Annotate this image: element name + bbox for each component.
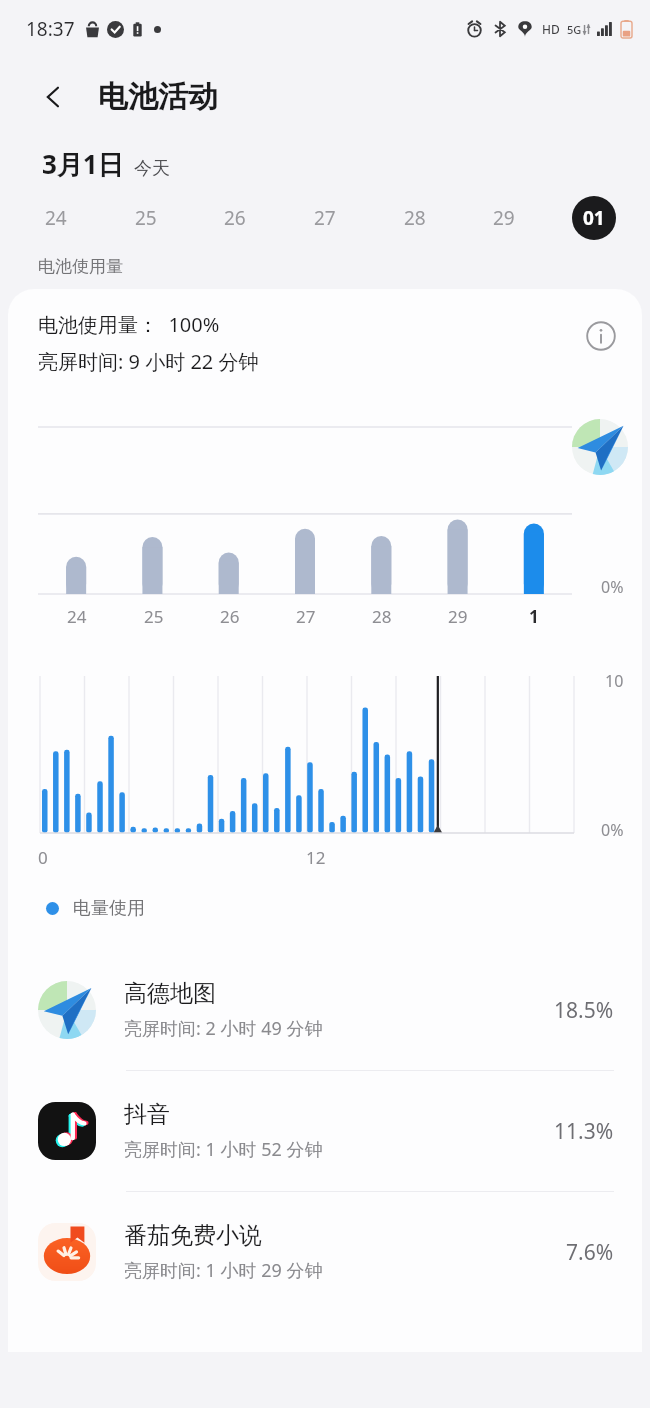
button[interactable]: 抖音 bbox=[8, 1071, 642, 1192]
staticText: 29 bbox=[493, 205, 515, 231]
staticText: 高德地图 bbox=[124, 979, 216, 1008]
staticText: 27 bbox=[296, 605, 316, 628]
button[interactable]: 高德地图 bbox=[8, 950, 642, 1071]
staticText: 5G bbox=[567, 22, 582, 37]
staticText: 0 bbox=[38, 846, 48, 869]
button[interactable]: 01 bbox=[572, 196, 616, 240]
staticText: 亮屏时间: 9 小时 22 分钟 bbox=[38, 348, 259, 375]
staticText: 今天 bbox=[134, 157, 170, 180]
staticText: 1 bbox=[529, 605, 539, 628]
staticText: 电量使用 bbox=[73, 897, 145, 920]
staticText: 0% bbox=[601, 576, 624, 598]
staticText: 亮屏时间: 1 小时 52 分钟 bbox=[124, 1137, 323, 1162]
button[interactable]: 26 bbox=[213, 196, 257, 240]
staticText: 番茄免费小说 bbox=[124, 1221, 262, 1250]
staticText: 28 bbox=[372, 605, 392, 628]
staticText: 26 bbox=[220, 605, 240, 628]
staticText: 25 bbox=[144, 605, 164, 628]
staticText: 24 bbox=[67, 605, 87, 628]
staticText: 0% bbox=[601, 819, 624, 841]
button[interactable]: Back bbox=[30, 73, 78, 121]
staticText: 亮屏时间: 1 小时 29 分钟 bbox=[124, 1258, 323, 1283]
staticText: 3月1日 bbox=[42, 146, 124, 182]
staticText: 电池活动 bbox=[98, 78, 218, 116]
staticText: 电池使用量： 100% bbox=[38, 311, 220, 338]
staticText: 7.6% bbox=[566, 1238, 614, 1267]
staticText: 29 bbox=[448, 605, 468, 628]
button[interactable]: 番茄免费小说 bbox=[8, 1192, 642, 1312]
button[interactable]: 29 bbox=[482, 196, 526, 240]
staticText: 26 bbox=[224, 205, 246, 231]
staticText: HD bbox=[542, 21, 560, 37]
staticText: 24 bbox=[45, 205, 67, 231]
button[interactable]: 24 bbox=[34, 196, 78, 240]
staticText: 25 bbox=[135, 205, 157, 231]
staticText: 亮屏时间: 2 小时 49 分钟 bbox=[124, 1016, 323, 1041]
button[interactable]: Info bbox=[578, 313, 624, 359]
button[interactable]: 27 bbox=[303, 196, 347, 240]
staticText: 抖音 bbox=[124, 1100, 170, 1129]
staticText: 12 bbox=[306, 846, 326, 869]
staticText: 18:37 bbox=[26, 16, 75, 42]
staticText: 10 bbox=[605, 670, 624, 692]
staticText: 11.3% bbox=[554, 1117, 614, 1146]
button[interactable]: 28 bbox=[393, 196, 437, 240]
staticText: 18.5% bbox=[554, 996, 614, 1025]
staticText: 电池使用量 bbox=[38, 256, 123, 277]
staticText: 28 bbox=[404, 205, 426, 231]
staticText: 27 bbox=[314, 205, 336, 231]
staticText: 01 bbox=[583, 205, 605, 231]
button[interactable]: 25 bbox=[124, 196, 168, 240]
